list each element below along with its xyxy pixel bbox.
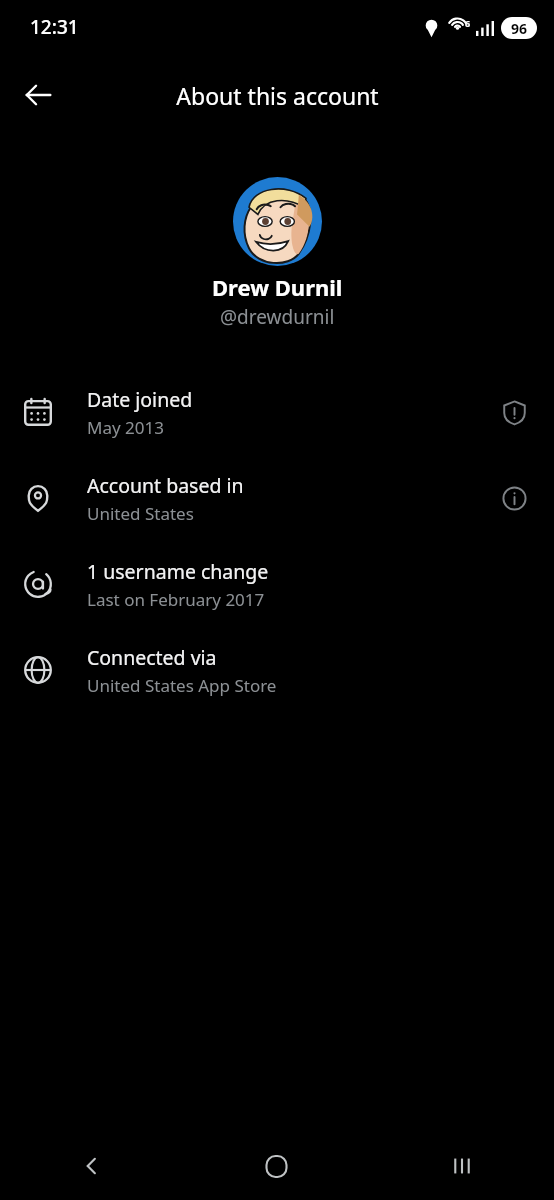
button[interactable]: Recent apps <box>369 1132 554 1200</box>
button[interactable]: Back <box>0 1132 184 1200</box>
staticText: Drew Durnil <box>212 272 343 302</box>
button[interactable]: Account verification info <box>492 390 536 434</box>
staticText: 96 <box>511 19 528 38</box>
staticText: Account based in <box>87 472 244 499</box>
staticText: May 2013 <box>87 416 164 439</box>
staticText: About this account <box>176 80 379 111</box>
staticText: Connected via <box>87 644 217 671</box>
button[interactable]: Connected via <box>0 627 554 713</box>
button[interactable]: Back <box>12 69 64 121</box>
staticText: United States App Store <box>87 674 277 697</box>
button[interactable]: More information <box>492 476 536 520</box>
staticText: 6 <box>465 17 471 29</box>
button[interactable]: Home <box>184 1132 369 1200</box>
staticText: 1 username change <box>87 558 269 585</box>
staticText: United States <box>87 502 194 525</box>
staticText: Last on February 2017 <box>87 588 265 611</box>
button[interactable]: Date joined <box>0 369 554 455</box>
staticText: @drewdurnil <box>220 304 335 330</box>
button[interactable]: 1 username change <box>0 541 554 627</box>
staticText: 12:31 <box>30 14 79 40</box>
button[interactable]: Account based in <box>0 455 554 541</box>
staticText: Date joined <box>87 386 193 413</box>
